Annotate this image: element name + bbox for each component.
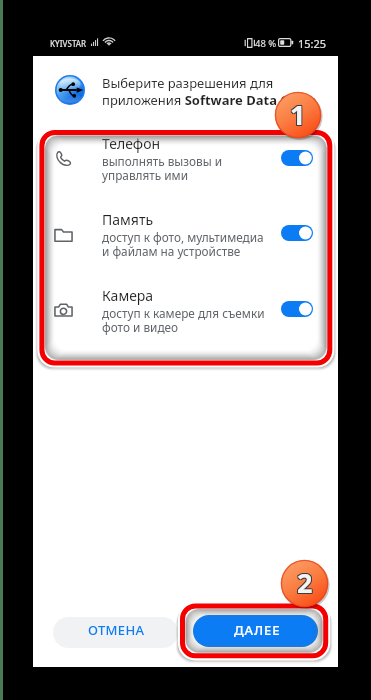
- staticText: доступ к фото, мультимедиа и файлам на у…: [102, 229, 264, 260]
- staticText: 1: [289, 97, 305, 134]
- staticText: 15:25: [298, 36, 327, 51]
- staticText: 2: [298, 563, 314, 600]
- other: USB: [55, 75, 85, 105]
- button[interactable]: ДАЛЕЕ: [193, 615, 318, 647]
- staticText: Телефон: [102, 134, 161, 153]
- staticText: выполнять вызовы и управлять ими: [102, 153, 223, 184]
- staticText: 1: [290, 97, 306, 134]
- staticText: 1: [291, 97, 307, 134]
- button[interactable]: [44, 127, 328, 197]
- staticText: 1: [291, 95, 307, 132]
- staticText: 1: [291, 96, 307, 133]
- staticText: доступ к камере для съемки фото и видео: [102, 305, 265, 336]
- staticText: Память: [102, 210, 154, 229]
- staticText: 2: [296, 563, 312, 600]
- staticText: 2: [297, 565, 313, 602]
- staticText: 2: [296, 565, 312, 602]
- staticText: 2: [297, 564, 313, 601]
- staticText: 48 %: [255, 37, 277, 50]
- staticText: 2: [298, 565, 314, 602]
- button[interactable]: Toggle permission: [281, 301, 313, 317]
- staticText: 1: [289, 95, 305, 132]
- button[interactable]: ОТМЕНА: [53, 617, 178, 648]
- staticText: 2: [297, 563, 313, 600]
- staticText: 1: [290, 96, 306, 133]
- button[interactable]: Toggle permission: [281, 150, 313, 166]
- staticText: KYIVSTAR: [50, 38, 87, 49]
- button[interactable]: Toggle permission: [281, 225, 313, 241]
- staticText: Выберите разрешения для приложения Softw…: [102, 74, 317, 109]
- staticText: 2: [298, 564, 314, 601]
- staticText: Камера: [102, 286, 154, 305]
- button[interactable]: [44, 279, 328, 349]
- button[interactable]: [44, 203, 328, 273]
- staticText: 1: [290, 95, 306, 132]
- staticText: 1: [289, 96, 305, 133]
- staticText: ОТМЕНА: [88, 621, 145, 639]
- staticText: 2: [296, 564, 312, 601]
- staticText: ДАЛЕЕ: [234, 621, 281, 639]
